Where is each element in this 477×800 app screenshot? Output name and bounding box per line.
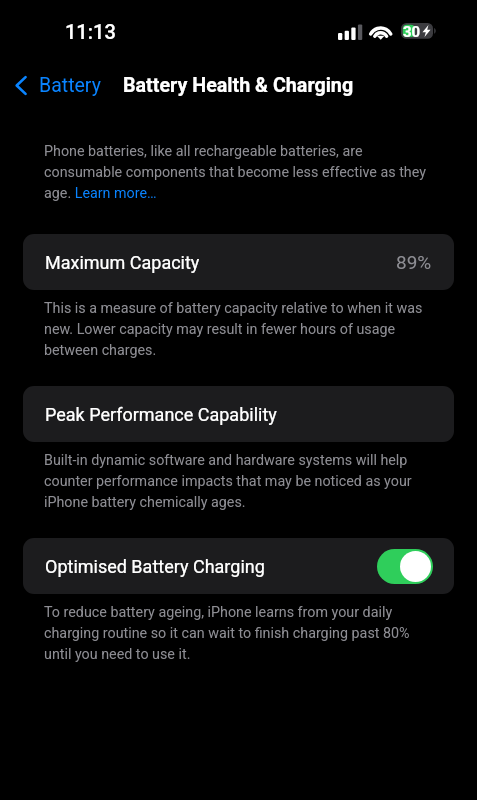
staticText: Peak Performance Capability — [45, 404, 277, 425]
button[interactable]: Peak Performance Capability — [23, 386, 454, 442]
button[interactable]: Optimised Battery Charging toggle — [377, 549, 433, 584]
button[interactable]: Maximum Capacity — [23, 234, 454, 290]
staticText: Maximum Capacity — [45, 252, 200, 273]
staticText: Phone batteries, like all rechargeable b… — [44, 139, 432, 202]
staticText: Optimised Battery Charging — [45, 556, 265, 577]
staticText: This is a measure of battery capacity re… — [44, 296, 432, 359]
staticText: Battery — [39, 74, 101, 97]
button[interactable]: Learn more — [74, 184, 159, 204]
button[interactable]: Battery — [0, 68, 109, 103]
staticText: Built-in dynamic software and hardware s… — [44, 448, 432, 511]
staticText: 89% — [396, 251, 432, 273]
staticText: Battery Health & Charging — [123, 74, 354, 97]
staticText: 30 — [403, 23, 421, 39]
button[interactable]: Optimised Battery Charging — [23, 538, 454, 594]
staticText: To reduce battery ageing, iPhone learns … — [44, 600, 432, 663]
staticText: 11:13 — [65, 20, 116, 43]
